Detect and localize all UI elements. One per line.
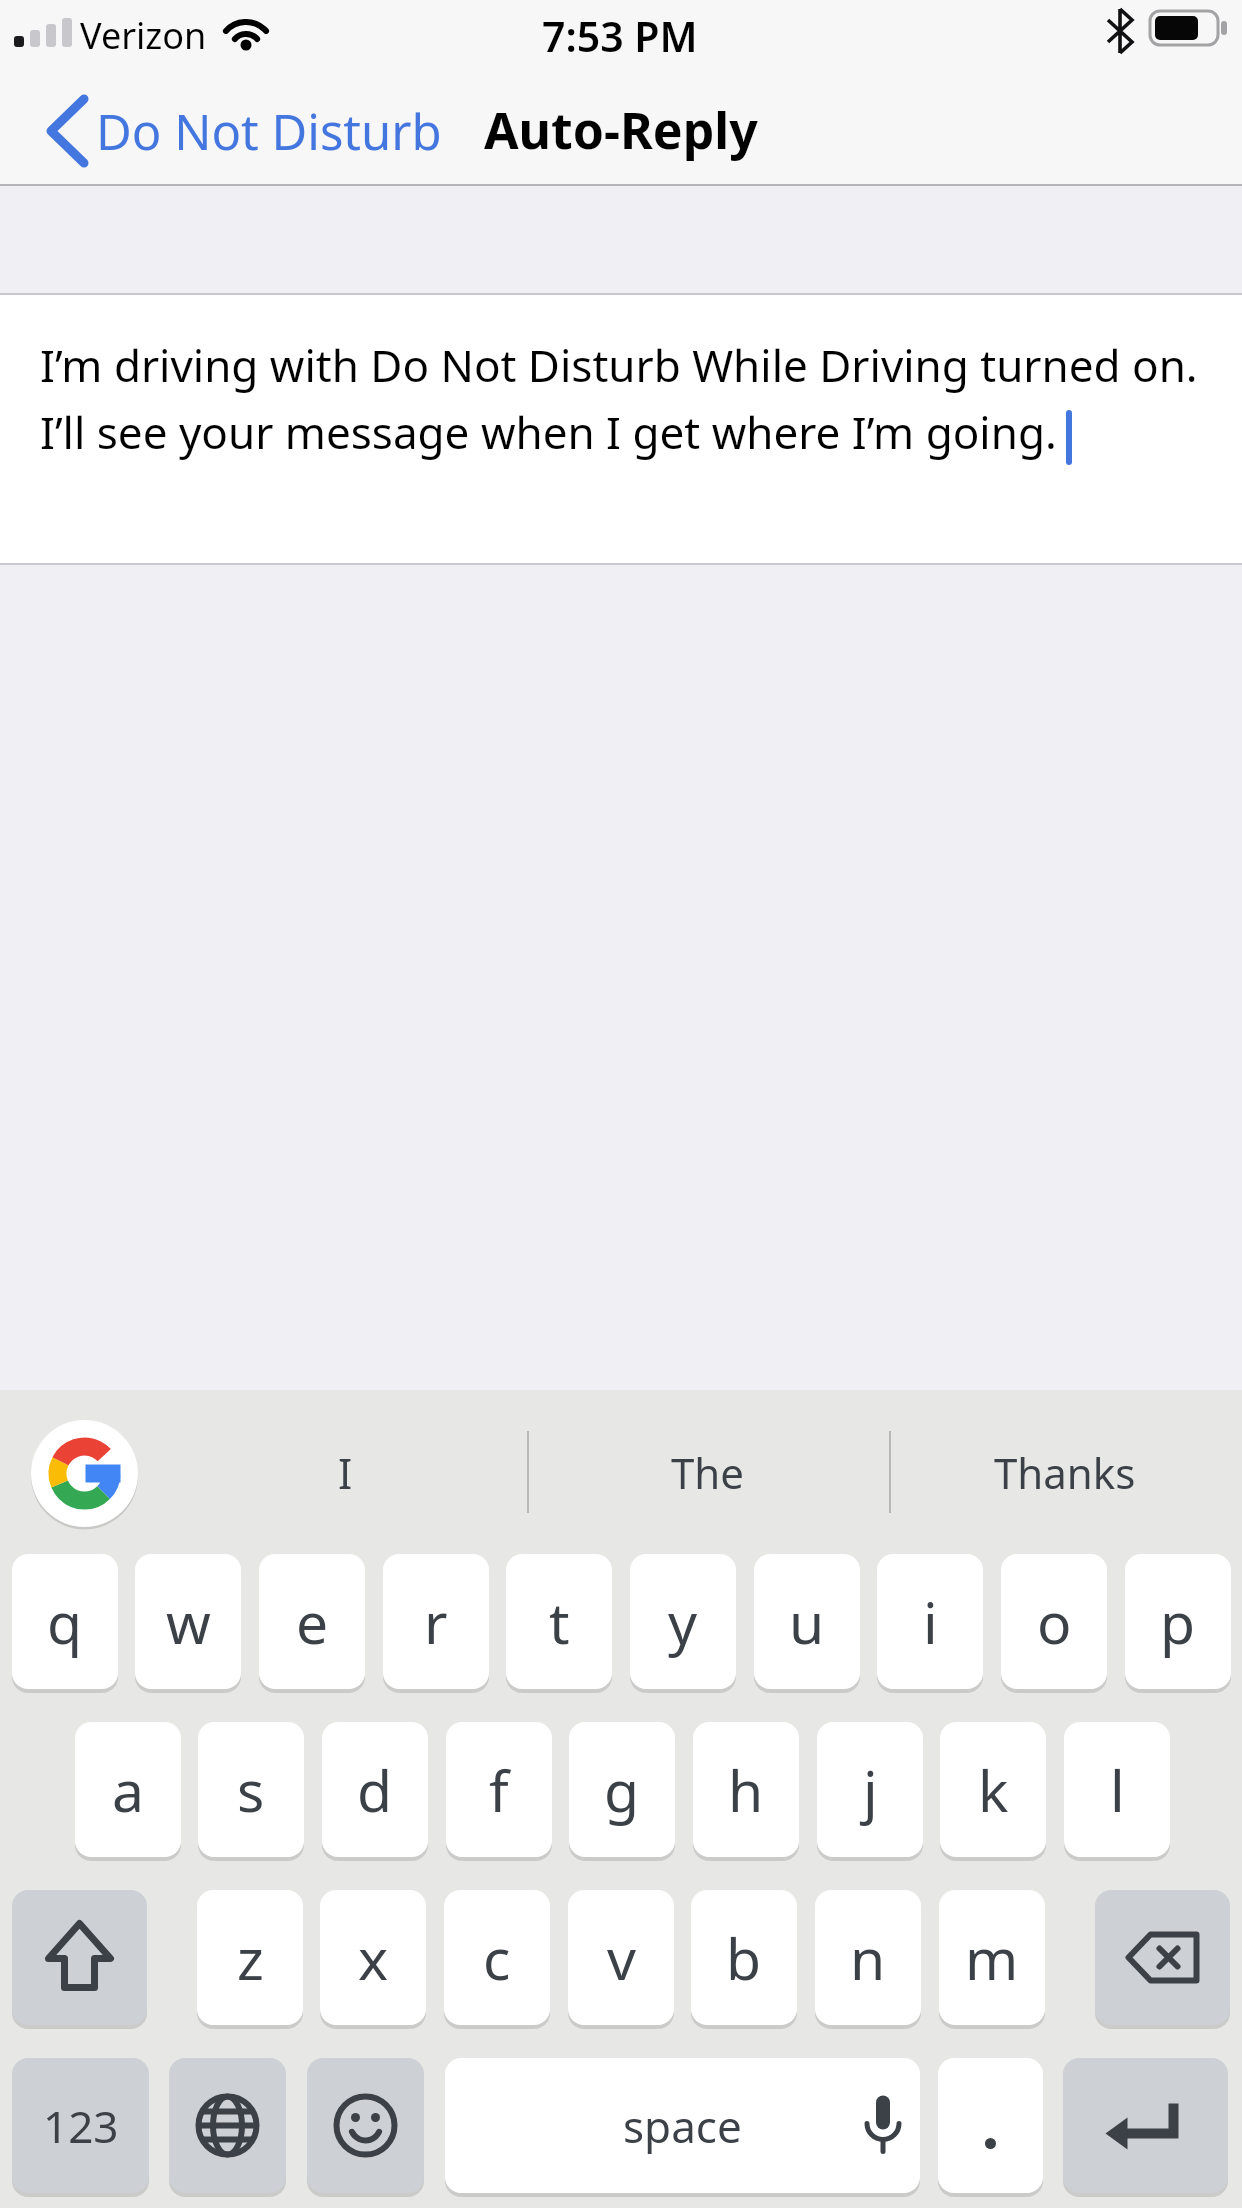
- staticText: y: [668, 1583, 698, 1661]
- staticText: The: [671, 1444, 744, 1501]
- staticText: o: [1037, 1583, 1072, 1661]
- button[interactable]: I: [195, 1430, 495, 1515]
- button[interactable]: The: [557, 1430, 857, 1515]
- button[interactable]: [1063, 2058, 1228, 2193]
- staticText: v: [607, 1919, 636, 1997]
- staticText: j: [863, 1751, 878, 1829]
- staticText: Thanks: [994, 1444, 1136, 1501]
- button[interactable]: p: [1125, 1554, 1231, 1689]
- button[interactable]: v: [568, 1890, 674, 2025]
- button[interactable]: f: [446, 1722, 552, 1857]
- button[interactable]: [1095, 1890, 1230, 2025]
- button[interactable]: [169, 2058, 286, 2193]
- button[interactable]: m: [939, 1890, 1045, 2025]
- button[interactable]: 123: [12, 2058, 149, 2193]
- staticText: d: [357, 1751, 393, 1829]
- staticText: space: [623, 2096, 742, 2156]
- button[interactable]: e: [259, 1554, 365, 1689]
- staticText: e: [296, 1583, 329, 1661]
- staticText: a: [112, 1751, 144, 1829]
- button[interactable]: s: [198, 1722, 304, 1857]
- staticText: w: [166, 1583, 211, 1661]
- button[interactable]: q: [12, 1554, 118, 1689]
- staticText: n: [850, 1919, 886, 1997]
- staticText: c: [483, 1919, 511, 1997]
- staticText: b: [726, 1919, 762, 1997]
- staticText: r: [424, 1583, 448, 1661]
- button[interactable]: w: [135, 1554, 241, 1689]
- button[interactable]: j: [817, 1722, 923, 1857]
- button[interactable]: h: [693, 1722, 799, 1857]
- button[interactable]: z: [197, 1890, 303, 2025]
- staticText: u: [789, 1583, 825, 1661]
- button[interactable]: k: [940, 1722, 1046, 1857]
- button[interactable]: Do Not Disturb: [30, 88, 460, 173]
- staticText: t: [549, 1583, 570, 1661]
- button[interactable]: d: [322, 1722, 428, 1857]
- staticText: Verizon: [80, 11, 207, 60]
- staticText: 7:53 PM: [542, 8, 698, 54]
- button[interactable]: i: [877, 1554, 983, 1689]
- staticText: s: [237, 1751, 265, 1829]
- staticText: g: [604, 1751, 640, 1829]
- button[interactable]: u: [754, 1554, 860, 1689]
- staticText: m: [965, 1919, 1019, 1997]
- button[interactable]: b: [691, 1890, 797, 2025]
- staticText: I’m driving with Do Not Disturb While Dr…: [40, 335, 1198, 461]
- button[interactable]: g: [569, 1722, 675, 1857]
- staticText: 123: [43, 2096, 119, 2156]
- button[interactable]: x: [320, 1890, 426, 2025]
- button[interactable]: t: [506, 1554, 612, 1689]
- button[interactable]: space: [445, 2058, 920, 2193]
- button[interactable]: c: [444, 1890, 550, 2025]
- staticText: Auto-Reply: [484, 96, 758, 164]
- staticText: q: [47, 1583, 83, 1661]
- button[interactable]: [31, 1420, 138, 1527]
- staticText: I: [338, 1444, 353, 1501]
- button[interactable]: [938, 2058, 1043, 2193]
- button[interactable]: [307, 2058, 424, 2193]
- staticText: k: [978, 1751, 1009, 1829]
- staticText: f: [489, 1751, 509, 1829]
- button[interactable]: l: [1064, 1722, 1170, 1857]
- staticText: Do Not Disturb: [96, 98, 442, 165]
- button[interactable]: o: [1001, 1554, 1107, 1689]
- staticText: i: [923, 1583, 938, 1661]
- button[interactable]: y: [630, 1554, 736, 1689]
- button[interactable]: n: [815, 1890, 921, 2025]
- staticText: x: [358, 1919, 389, 1997]
- staticText: h: [728, 1751, 764, 1829]
- button[interactable]: [12, 1890, 147, 2025]
- button[interactable]: Thanks: [915, 1430, 1215, 1515]
- button[interactable]: r: [383, 1554, 489, 1689]
- staticText: p: [1160, 1583, 1196, 1661]
- staticText: l: [1110, 1751, 1125, 1829]
- button[interactable]: a: [75, 1722, 181, 1857]
- staticText: z: [237, 1919, 264, 1997]
